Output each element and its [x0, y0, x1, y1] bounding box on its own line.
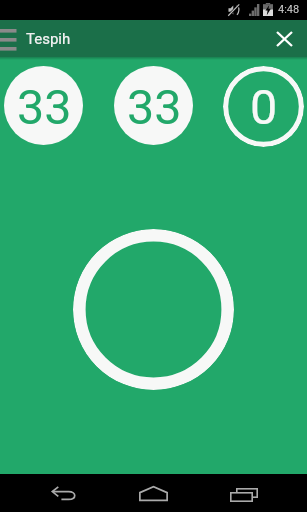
- staticText: 4:48: [278, 3, 300, 16]
- staticText: Tespih: [26, 30, 71, 48]
- button[interactable]: Close: [265, 20, 303, 57]
- button[interactable]: 0: [223, 66, 304, 147]
- button[interactable]: Count: [73, 229, 234, 390]
- button[interactable]: Back: [42, 474, 86, 512]
- staticText: 0: [250, 79, 278, 136]
- button[interactable]: Home: [131, 474, 175, 512]
- button[interactable]: Recent apps: [222, 474, 266, 512]
- button[interactable]: 33: [114, 66, 193, 145]
- button[interactable]: 33: [4, 66, 83, 145]
- button[interactable]: Menu: [0, 20, 20, 57]
- staticText: 33: [17, 79, 72, 136]
- staticText: 33: [127, 79, 182, 136]
